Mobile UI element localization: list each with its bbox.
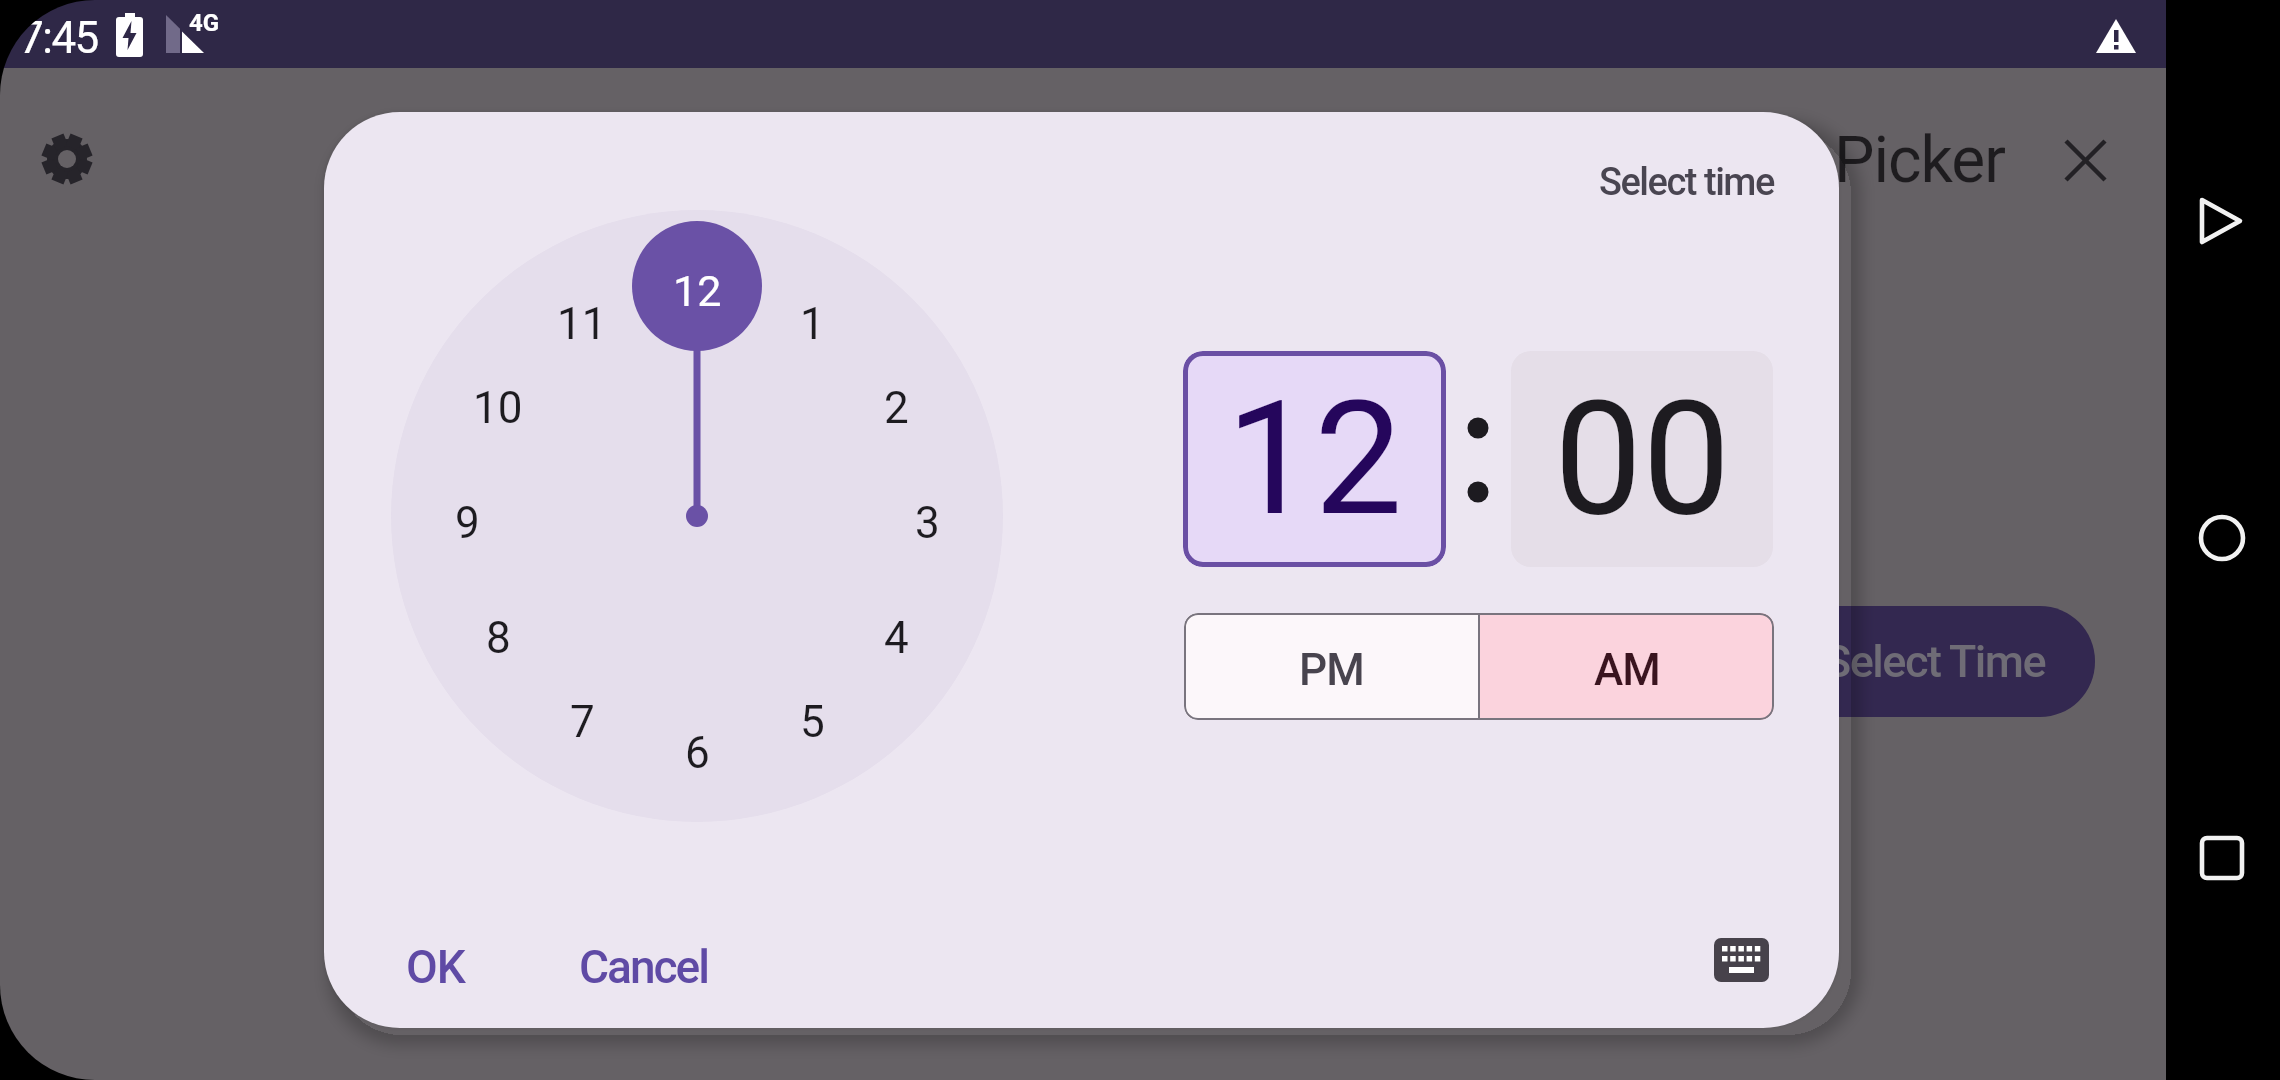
staticText: 2: [884, 382, 909, 434]
button[interactable]: AM: [1480, 613, 1774, 720]
button[interactable]: Cancel: [554, 928, 734, 1006]
staticText: 5: [800, 696, 825, 748]
staticText: OK: [406, 940, 465, 994]
staticText: 7:45: [19, 12, 98, 64]
staticText: 10: [473, 382, 523, 434]
button[interactable]: [2064, 139, 2107, 182]
staticText: Picker: [1834, 123, 2005, 198]
button[interactable]: 12: [632, 221, 762, 351]
button[interactable]: OK: [380, 928, 490, 1006]
button[interactable]: [38, 130, 96, 188]
staticText: Cancel: [579, 940, 709, 994]
staticText: 00: [1554, 367, 1731, 551]
staticText: 6: [685, 727, 710, 779]
staticText: 12: [1226, 367, 1403, 551]
staticText: Select Time: [1824, 635, 2046, 688]
button[interactable]: [2199, 515, 2245, 561]
staticText: 11: [557, 298, 607, 350]
staticText: PM: [1299, 644, 1364, 696]
staticText: 12: [673, 266, 722, 316]
staticText: AM: [1594, 644, 1660, 696]
staticText: 4G: [189, 9, 220, 37]
button[interactable]: PM: [1184, 613, 1478, 720]
staticText: 8: [486, 612, 511, 664]
button[interactable]: 00: [1511, 351, 1773, 567]
button[interactable]: 12: [1183, 351, 1446, 567]
button[interactable]: [2199, 197, 2245, 245]
button[interactable]: [2200, 836, 2244, 880]
staticText: 3: [915, 497, 940, 549]
button[interactable]: [1714, 938, 1769, 982]
staticText: 1: [800, 298, 825, 350]
staticText: Select time: [1599, 160, 1774, 205]
button[interactable]: Select Time: [1640, 606, 2095, 717]
staticText: 9: [455, 497, 480, 549]
staticText: 7: [570, 696, 595, 748]
staticText: 4: [884, 612, 909, 664]
